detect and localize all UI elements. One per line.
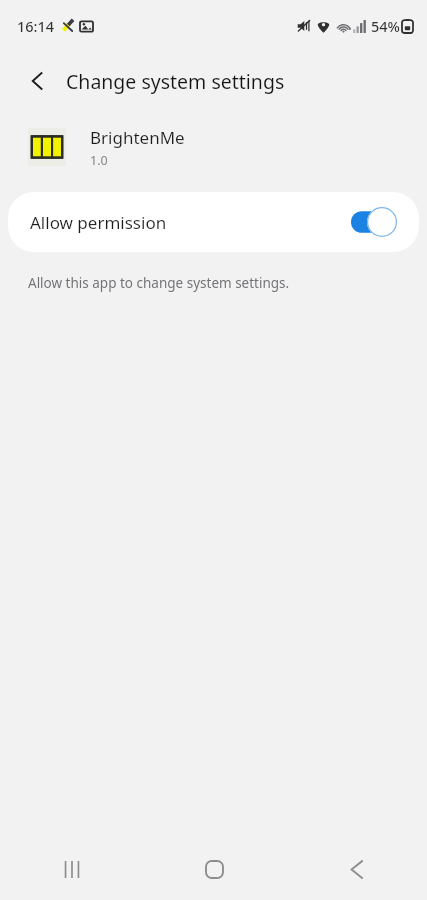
button[interactable]: Navigate up (14, 57, 62, 105)
staticText: BrightenMe (90, 126, 185, 149)
staticText: Allow permission (30, 211, 167, 234)
staticText: 54% (371, 16, 400, 36)
staticText: Allow this app to change system settings… (28, 274, 290, 292)
staticText: 16:14 (17, 16, 55, 36)
button[interactable]: Home (143, 838, 285, 900)
button[interactable]: Recent apps (0, 838, 143, 900)
button[interactable]: Allow permission (8, 192, 419, 252)
button[interactable]: Allow permission toggle (351, 207, 397, 237)
staticText: Change system settings (66, 68, 285, 95)
button[interactable]: Back (285, 838, 427, 900)
staticText: 1.0 (90, 152, 108, 169)
